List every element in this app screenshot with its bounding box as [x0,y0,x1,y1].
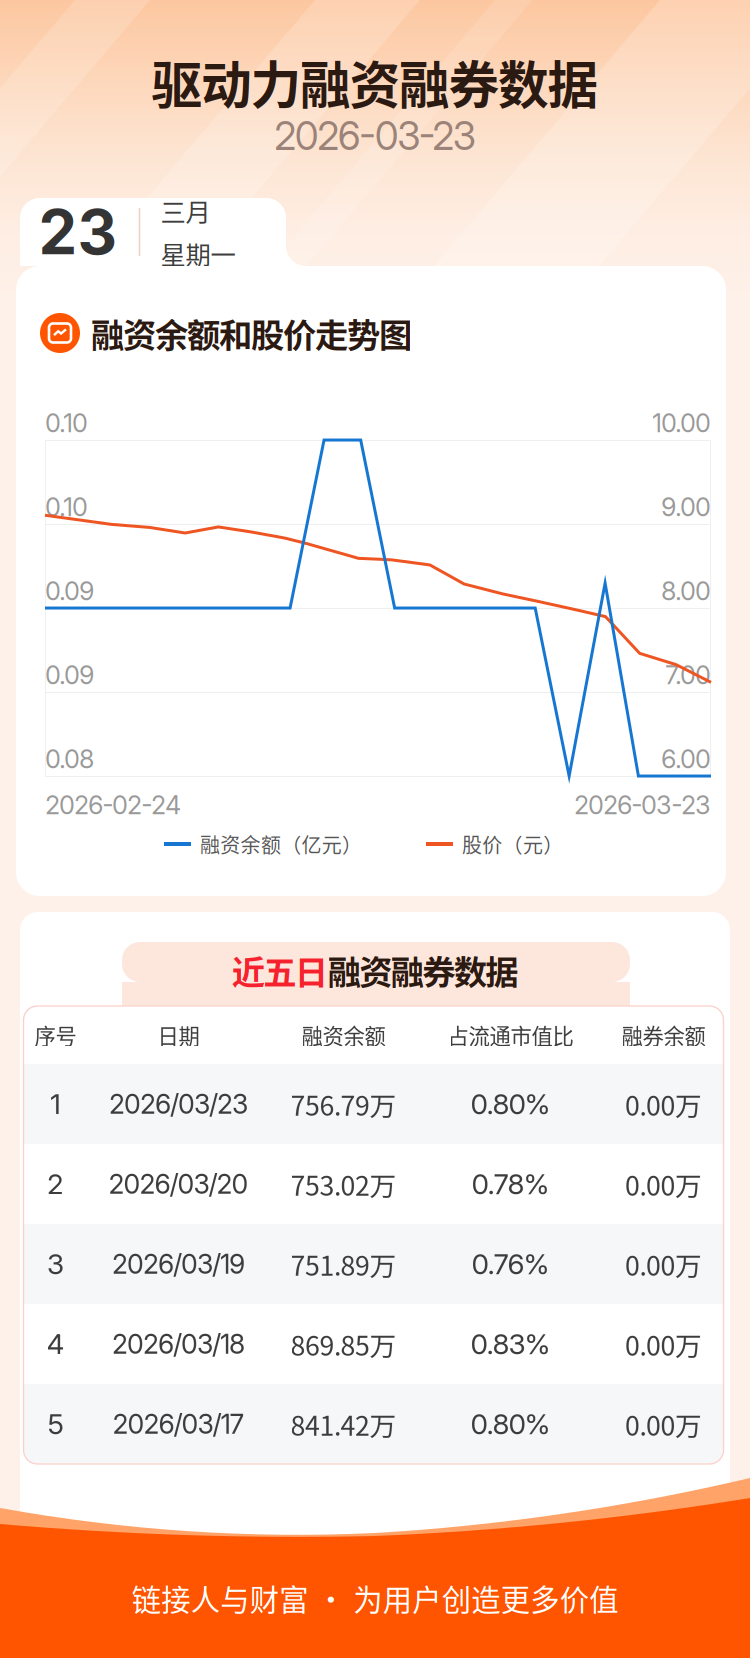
staticText: 753.02万 [290,1165,396,1203]
staticText: 链接人与财富 · 为用户创造更多价值 [132,1577,618,1619]
staticText: 三月 [160,192,210,229]
staticText: 2026-03-23 [274,113,476,159]
staticText: 融资余额和股价走势图 [91,309,412,357]
staticText: 2026/03/19 [112,1248,245,1280]
staticText: 融资余额 [301,1020,385,1050]
staticText: 0.09 [45,660,94,690]
staticText: 3 [47,1247,64,1281]
staticText: 6.00 [661,744,711,774]
staticText: 2026/03/23 [109,1088,248,1120]
staticText: 0.10 [45,408,88,438]
staticText: 0.00万 [625,1325,702,1363]
staticText: 0.83% [470,1327,550,1361]
staticText: 2 [47,1167,64,1201]
staticText: 股价（元） [462,829,563,858]
staticText: 841.42万 [290,1405,396,1443]
staticText: 序号 [34,1020,76,1050]
staticText: 2026/03/20 [108,1168,248,1200]
staticText: 0.08 [45,744,94,774]
staticText: 756.79万 [290,1085,396,1123]
staticText: 日期 [157,1020,199,1050]
staticText: 7.00 [665,660,711,690]
staticText: 4 [46,1327,64,1361]
staticText: 0.09 [45,576,94,606]
staticText: 0.80% [470,1087,550,1121]
staticText: 0.00万 [625,1245,702,1283]
staticText: 近五日 [232,946,328,994]
staticText: 751.89万 [290,1245,396,1283]
staticText: 869.85万 [290,1325,396,1363]
staticText: 0.10 [45,492,88,522]
staticText: 2026-02-24 [45,790,181,820]
staticText: 0.76% [471,1247,549,1281]
staticText: 23 [38,195,117,269]
staticText: 融资融券数据 [328,946,518,994]
staticText: 0.00万 [625,1165,702,1203]
staticText: 融券余额 [621,1020,705,1050]
staticText: 8.00 [661,576,711,606]
staticText: 9.00 [661,492,711,522]
staticText: 0.80% [470,1407,550,1441]
staticText: 1 [50,1087,61,1121]
staticText: 0.00万 [625,1085,702,1123]
staticText: 2026-03-23 [574,790,711,820]
staticText: 2026/03/18 [112,1328,245,1360]
staticText: 融资余额（亿元） [200,829,362,858]
staticText: 0.78% [471,1167,549,1201]
staticText: 占流通市值比 [447,1020,573,1050]
staticText: 10.00 [652,408,711,438]
staticText: 驱动力融资融券数据 [151,45,598,119]
staticText: 星期一 [160,235,235,272]
staticText: 0.00万 [625,1405,702,1443]
staticText: 2026/03/17 [112,1408,244,1440]
staticText: 5 [47,1407,63,1441]
